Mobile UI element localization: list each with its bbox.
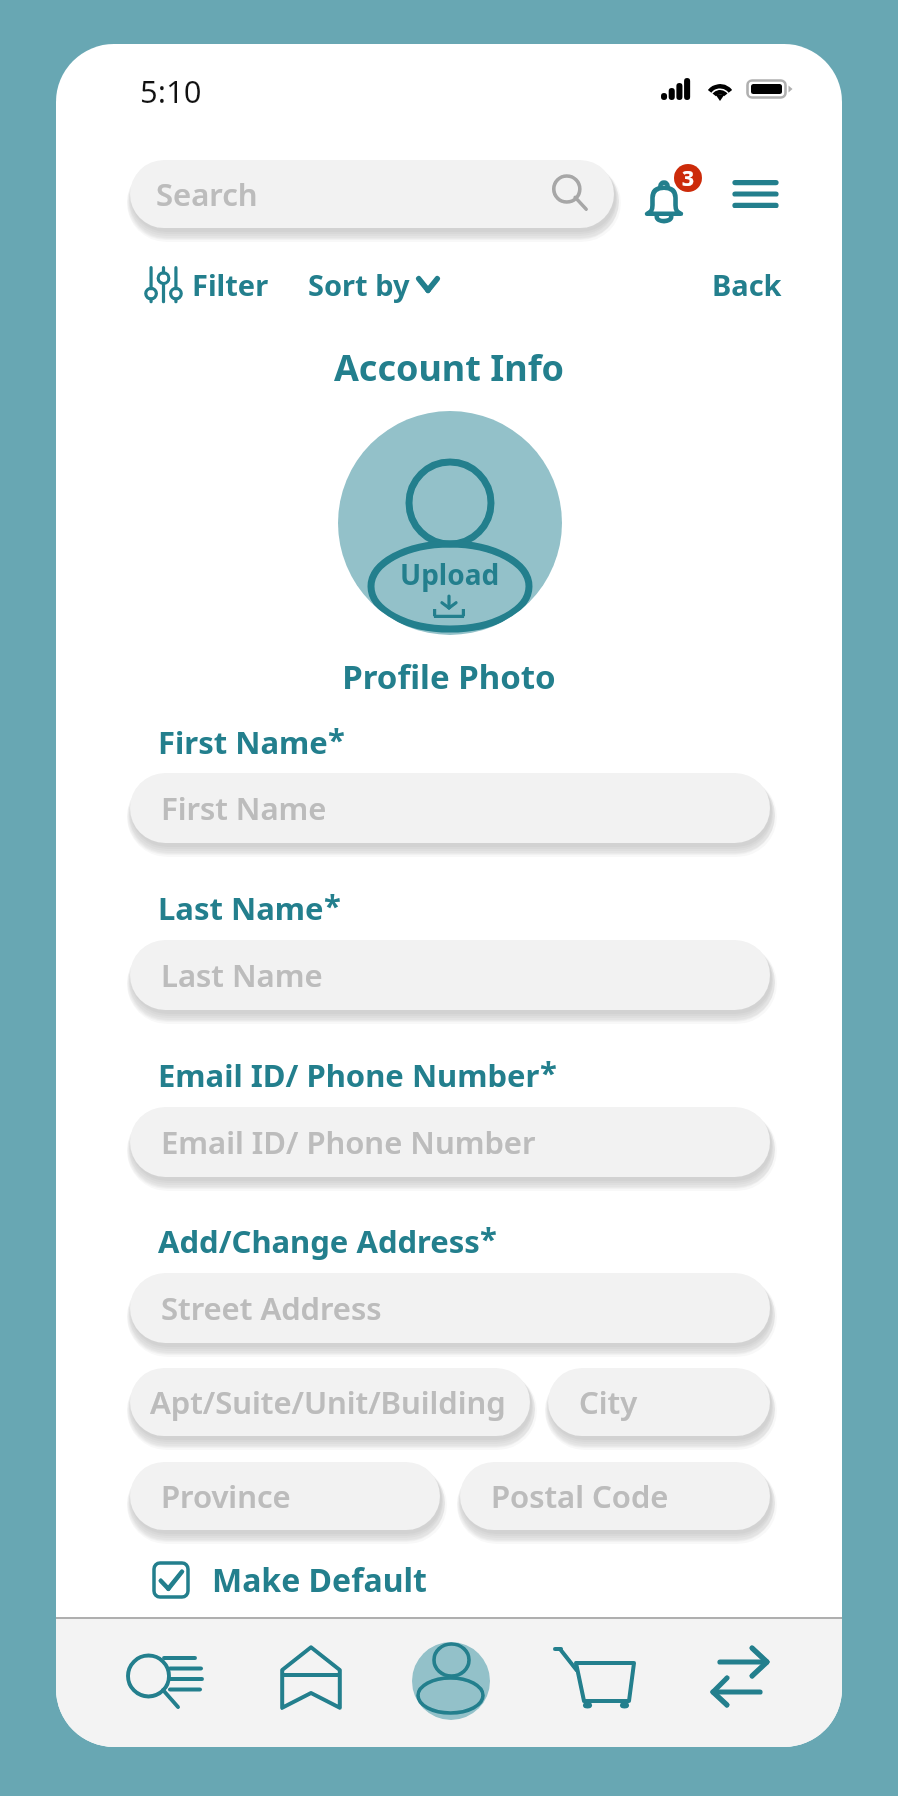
staticText: Province (161, 1475, 291, 1517)
staticText: * (324, 884, 341, 926)
staticText: Street Address (161, 1287, 382, 1329)
staticText: * (328, 718, 345, 760)
staticText: Email ID/ Phone Number (158, 1054, 540, 1096)
staticText: City (579, 1381, 638, 1423)
staticText: Last Name (161, 954, 323, 996)
staticText: Sort by (308, 265, 410, 304)
button[interactable]: City (548, 1368, 770, 1436)
button[interactable]: Last Name (130, 940, 770, 1010)
button[interactable]: Profile (402, 1632, 500, 1730)
staticText: Postal Code (491, 1475, 669, 1517)
button[interactable]: Menu (716, 162, 794, 226)
staticText: * (480, 1217, 497, 1259)
button[interactable]: Back (712, 256, 782, 312)
button[interactable]: Email ID/ Phone Number (130, 1107, 770, 1177)
button[interactable]: Province (130, 1462, 440, 1530)
button[interactable]: Search (114, 1635, 216, 1727)
staticText: Back (712, 265, 782, 304)
staticText: 3 (682, 164, 695, 192)
button[interactable]: Filter (146, 256, 269, 312)
staticText: Upload (400, 555, 500, 593)
staticText: Make Default (212, 1558, 427, 1602)
button[interactable]: Street Address (130, 1273, 770, 1343)
button[interactable]: Notifications (634, 160, 712, 244)
button[interactable]: First Name (130, 773, 770, 843)
staticText: 5:10 (140, 70, 202, 112)
staticText: First Name (161, 787, 327, 829)
staticText: First Name (158, 721, 328, 763)
staticText: * (540, 1051, 557, 1093)
staticText: Account Info (56, 343, 842, 392)
button[interactable]: Cart (545, 1631, 647, 1725)
staticText: Apt/Suite/Unit/Building (150, 1381, 506, 1423)
staticText: Last Name (158, 887, 324, 929)
button[interactable]: Make Default (152, 1552, 427, 1608)
button[interactable]: Transfer (691, 1629, 789, 1723)
button[interactable]: Upload profile photo (338, 411, 562, 635)
button[interactable]: Search (130, 160, 614, 228)
button[interactable]: Apt/Suite/Unit/Building (130, 1368, 530, 1436)
staticText: Filter (192, 265, 269, 304)
button[interactable]: Postal Code (460, 1462, 770, 1530)
button[interactable]: Sort by (308, 256, 440, 312)
button[interactable]: Home (264, 1631, 358, 1725)
staticText: Search (156, 173, 258, 215)
staticText: Email ID/ Phone Number (161, 1121, 536, 1163)
staticText: Add/Change Address (158, 1220, 480, 1262)
staticText: Profile Photo (56, 654, 842, 699)
